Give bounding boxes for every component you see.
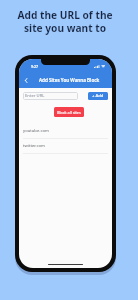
- button[interactable]: twitter.com: [23, 139, 108, 154]
- staticText: youtube.com: [23, 128, 49, 134]
- staticText: + Add: [92, 93, 104, 99]
- staticText: Block all sites: [57, 110, 81, 115]
- button[interactable]: youtube.com: [23, 124, 108, 139]
- button[interactable]: Block all sites: [54, 107, 84, 117]
- button[interactable]: Back: [22, 76, 30, 84]
- staticText: Enter URL: [25, 93, 45, 99]
- button[interactable]: + Add: [88, 92, 108, 100]
- staticText: twitter.com: [23, 143, 45, 149]
- button[interactable]: Enter URL: [23, 92, 78, 100]
- staticText: Add Sites You Wanna Block: [39, 77, 100, 83]
- staticText: Add the URL of the site you want to: [17, 8, 113, 35]
- staticText: 9:27: [31, 64, 39, 69]
